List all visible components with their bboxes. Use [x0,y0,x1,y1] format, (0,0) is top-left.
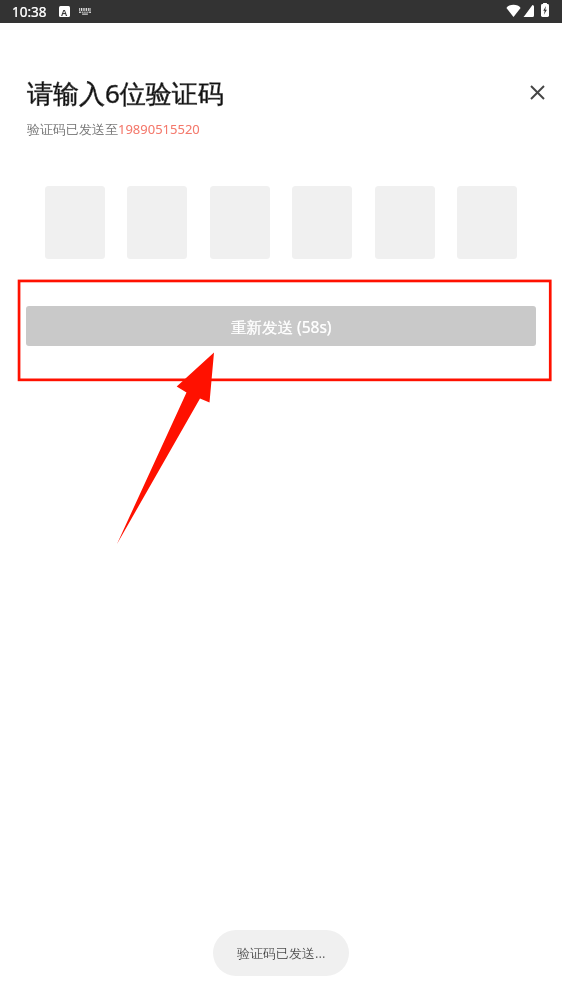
staticText: 验证码已发送至19890515520 [27,120,200,138]
staticText: 请输入6位验证码 [27,75,224,111]
button[interactable]: 重新发送 (58s) [26,306,536,346]
staticText: 10:38 [12,3,47,21]
staticText: A [61,6,68,17]
staticText: 验证码已发送... [237,944,326,962]
button[interactable]: Close [517,72,557,112]
button[interactable]: 验证码已发送... [213,930,349,976]
staticText: 请输入6位验证码 [27,75,224,111]
staticText: 重新发送 (58s) [231,316,332,337]
